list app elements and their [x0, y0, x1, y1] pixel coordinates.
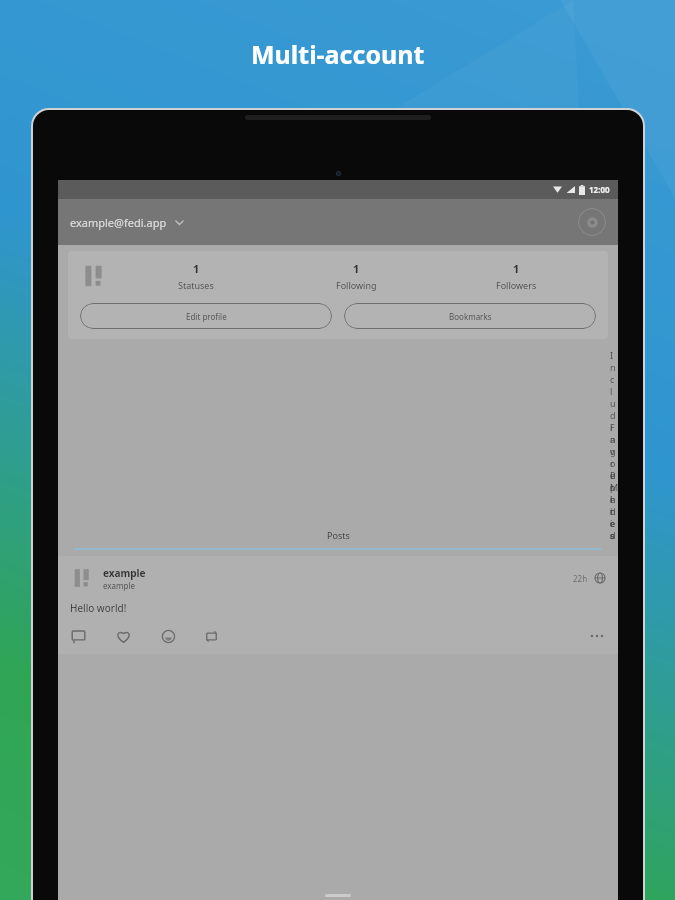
staticText: 1 — [193, 261, 200, 276]
staticText: example — [103, 566, 146, 580]
button[interactable]: Bookmarks — [344, 303, 596, 329]
staticText: 1 — [353, 261, 360, 276]
button[interactable]: More options — [588, 627, 606, 645]
button[interactable]: Favourite — [115, 628, 132, 645]
staticText: Hello world! — [70, 601, 127, 615]
button[interactable]: 1 — [436, 261, 596, 291]
staticText: Bookmarks — [449, 311, 492, 322]
staticText: 12:00 — [589, 184, 610, 195]
button[interactable]: Reply — [70, 628, 87, 645]
button[interactable]: 1 — [276, 261, 436, 291]
staticText: example@fedi.app — [70, 215, 167, 230]
button[interactable]: Boost — [203, 628, 220, 645]
staticText: Statuses — [178, 279, 214, 291]
staticText: Posts — [327, 529, 350, 541]
button[interactable]: example@fedi.app — [58, 215, 186, 230]
staticText: Edit profile — [186, 311, 227, 322]
staticText: 1 — [513, 261, 520, 276]
staticText: example — [103, 580, 136, 591]
button[interactable]: 1 — [116, 261, 276, 291]
button[interactable]: Posts — [70, 529, 606, 550]
staticText: Multi-account — [251, 37, 425, 71]
button[interactable]: Add reaction — [160, 628, 177, 645]
button[interactable]: Edit profile — [80, 303, 332, 329]
button[interactable]: Account settings — [578, 208, 606, 236]
staticText: Following — [336, 279, 377, 291]
staticText: Followers — [496, 279, 537, 291]
staticText: 22h — [573, 573, 588, 584]
